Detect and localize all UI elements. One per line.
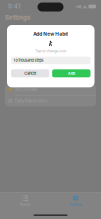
staticText: 9:41: [8, 3, 20, 10]
button[interactable]: Cancel: [11, 69, 49, 77]
staticText: Habits: [20, 202, 31, 207]
button[interactable]: Daily Reminders: [5, 95, 96, 106]
staticText: Add: [68, 71, 75, 76]
button[interactable]: Add: [52, 69, 90, 77]
staticText: Tap to change icon: [35, 49, 66, 53]
staticText: 10 thousand steps: [13, 58, 43, 63]
staticText: Cancel: [24, 71, 36, 76]
button[interactable]: Habits: [0, 192, 50, 209]
button[interactable]: Settings: [50, 192, 101, 209]
button[interactable]: Tap to change icon: [35, 37, 66, 53]
button[interactable]: My Streaks: [5, 84, 96, 95]
staticText: My Streaks: [15, 87, 37, 92]
staticText: Settings: [5, 14, 30, 21]
staticText: Daily Reminders: [15, 98, 47, 103]
staticText: Add New Habit: [33, 31, 68, 37]
staticText: Settings: [69, 202, 82, 207]
